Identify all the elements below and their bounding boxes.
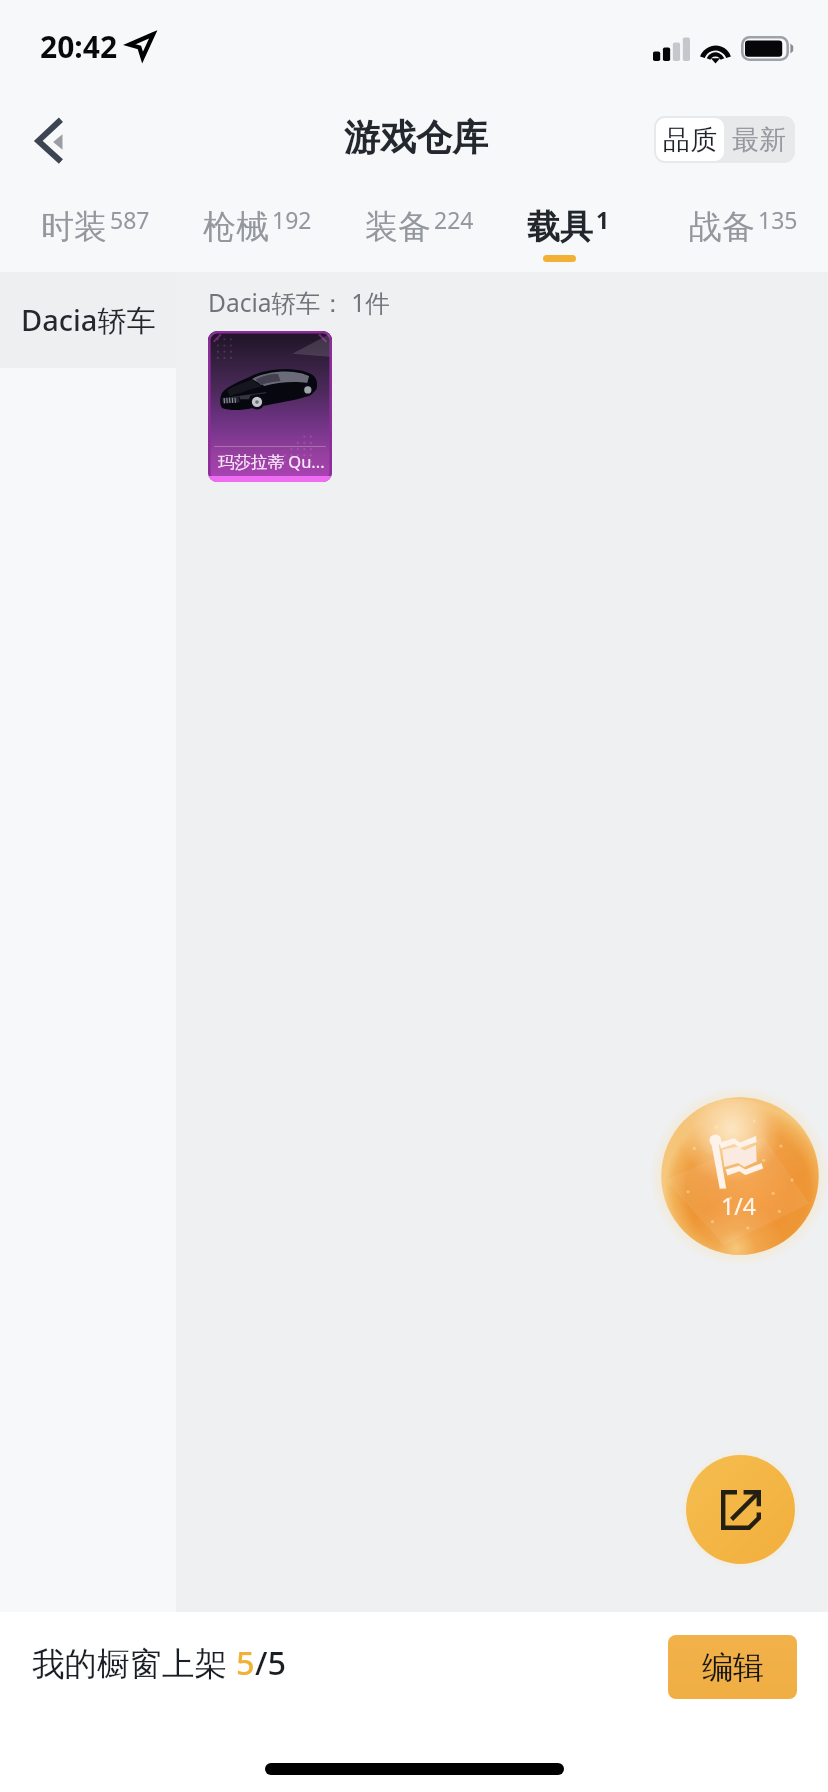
staticText: 1 <box>596 204 610 235</box>
button[interactable]: 最新 <box>724 118 793 161</box>
staticText: Dacia轿车： 1件 <box>208 286 390 319</box>
staticText: 编辑 <box>702 1648 764 1687</box>
button[interactable]: 战备 <box>659 189 809 272</box>
staticText: 品质 <box>663 123 717 157</box>
staticText: 135 <box>758 204 798 235</box>
button[interactable]: Dacia轿车 <box>0 272 176 368</box>
button[interactable]: 装备 <box>335 189 485 272</box>
staticText: 装备 <box>365 206 431 248</box>
staticText: 载具 <box>527 206 593 248</box>
button[interactable]: 载具 <box>497 189 647 272</box>
staticText: 时装 <box>41 206 107 248</box>
button[interactable]: 玛莎拉蒂 Qu... <box>208 331 332 482</box>
staticText: Dacia轿车 <box>21 300 156 340</box>
staticText: 192 <box>272 204 312 235</box>
button[interactable]: Back <box>22 112 78 168</box>
staticText: 587 <box>110 204 150 235</box>
staticText: 玛莎拉蒂 Qu... <box>218 450 325 473</box>
staticText: 20:42 <box>40 26 118 67</box>
staticText: 5 <box>236 1640 255 1684</box>
staticText: 最新 <box>732 123 786 157</box>
staticText: /5 <box>255 1640 287 1684</box>
staticText: 游戏仓库 <box>344 115 488 160</box>
button[interactable]: 品质 <box>656 118 724 161</box>
button[interactable]: Open in new window <box>681 1450 800 1569</box>
button[interactable]: 枪械 <box>173 189 323 272</box>
button[interactable]: 编辑 <box>668 1635 797 1699</box>
staticText: 我的橱窗上架 <box>32 1640 236 1684</box>
staticText: 枪械 <box>203 206 269 248</box>
button[interactable]: 时装 <box>11 189 161 272</box>
staticText: 224 <box>434 204 474 235</box>
staticText: 战备 <box>689 206 755 248</box>
staticText: 1/4 <box>721 1190 756 1221</box>
